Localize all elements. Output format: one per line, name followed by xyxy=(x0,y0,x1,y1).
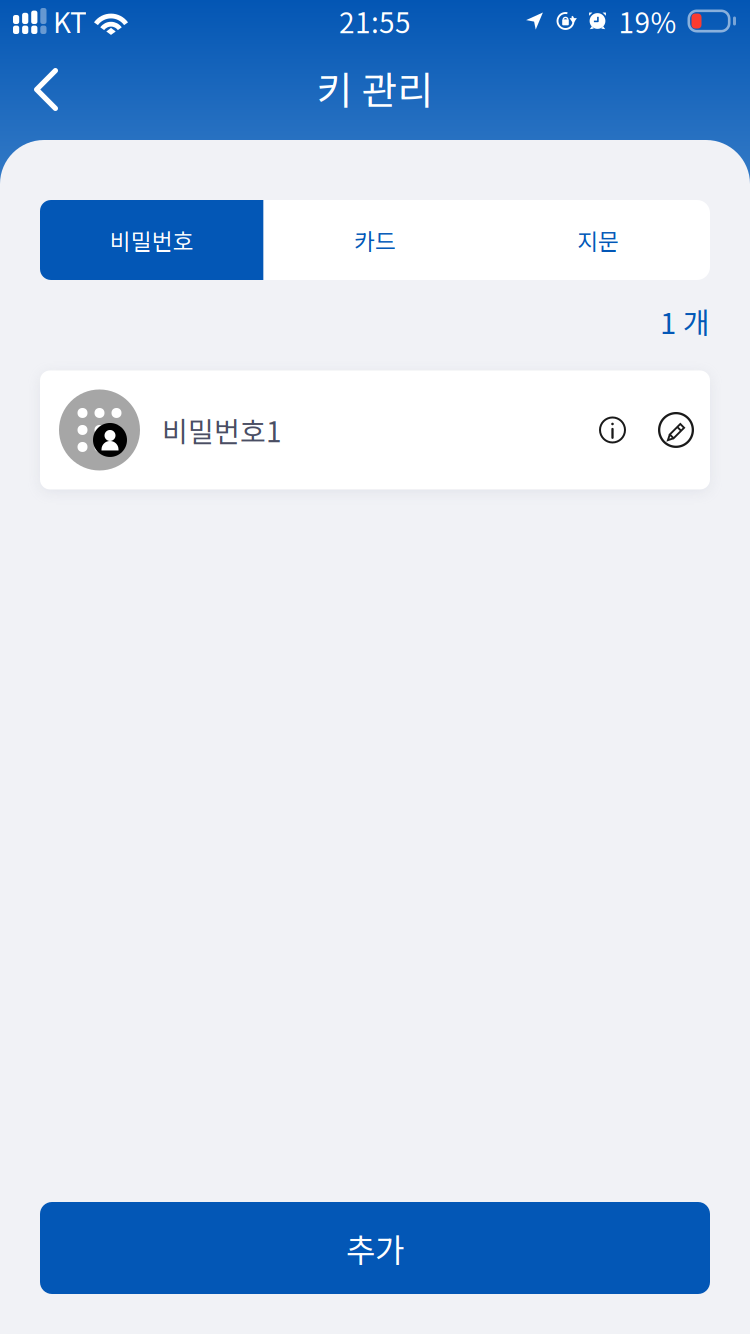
staticText: 키 관리 xyxy=(316,60,433,116)
button[interactable]: Info xyxy=(593,410,632,449)
button[interactable]: 비밀번호 xyxy=(40,200,263,280)
button[interactable]: Back xyxy=(0,54,77,128)
staticText: 비밀번호 xyxy=(110,224,194,256)
staticText: 추가 xyxy=(346,1225,404,1271)
staticText: KT xyxy=(53,1,87,41)
staticText: 비밀번호1 xyxy=(162,410,282,450)
button[interactable]: 카드 xyxy=(263,200,487,280)
button[interactable]: Edit xyxy=(654,408,698,452)
staticText: 지문 xyxy=(577,224,619,256)
staticText: 1 개 xyxy=(660,300,710,342)
staticText: 카드 xyxy=(354,224,396,256)
button[interactable]: 추가 xyxy=(40,1202,710,1294)
button[interactable]: 지문 xyxy=(487,200,710,280)
staticText: 21:55 xyxy=(339,1,411,41)
staticText: 19% xyxy=(618,1,676,41)
